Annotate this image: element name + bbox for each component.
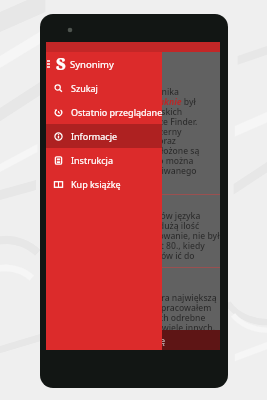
staticText: Szukaj	[71, 82, 98, 94]
staticText: Ostatnio przeglądane	[71, 106, 162, 118]
staticText: dostępny jeszcze już od lat 80., kiedy z…	[55, 240, 205, 271]
button[interactable]: Open navigation drawer	[46, 52, 162, 76]
staticText: materiał zebrany ręcznie oraz odpowiedni…	[55, 135, 200, 176]
staticText: Pierwsza edycja tego słownika wyrazów, k…	[55, 86, 198, 137]
button[interactable]: Instrukcja	[46, 148, 162, 172]
staticText: To jest słownik tych wyrazów języka pols…	[55, 210, 220, 241]
other: Open navigation drawer	[47, 60, 50, 68]
button[interactable]: Informacje	[46, 124, 162, 148]
staticText: S	[56, 53, 66, 75]
button[interactable]: Szukaj	[46, 76, 162, 100]
button[interactable]: Ostatnio przeglądane	[46, 100, 162, 124]
staticText: Słownik, którego braknie Zbiór ten napra…	[55, 282, 217, 333]
button[interactable]: Zamów książkę	[46, 330, 220, 350]
staticText: Synonimy	[70, 58, 114, 71]
staticText: Informacje	[71, 130, 118, 142]
staticText: Instrukcja	[71, 154, 113, 166]
staticText: Kup książkę	[71, 178, 121, 190]
button[interactable]: Kup książkę	[46, 172, 162, 196]
staticText: Zamów książkę	[100, 334, 166, 346]
